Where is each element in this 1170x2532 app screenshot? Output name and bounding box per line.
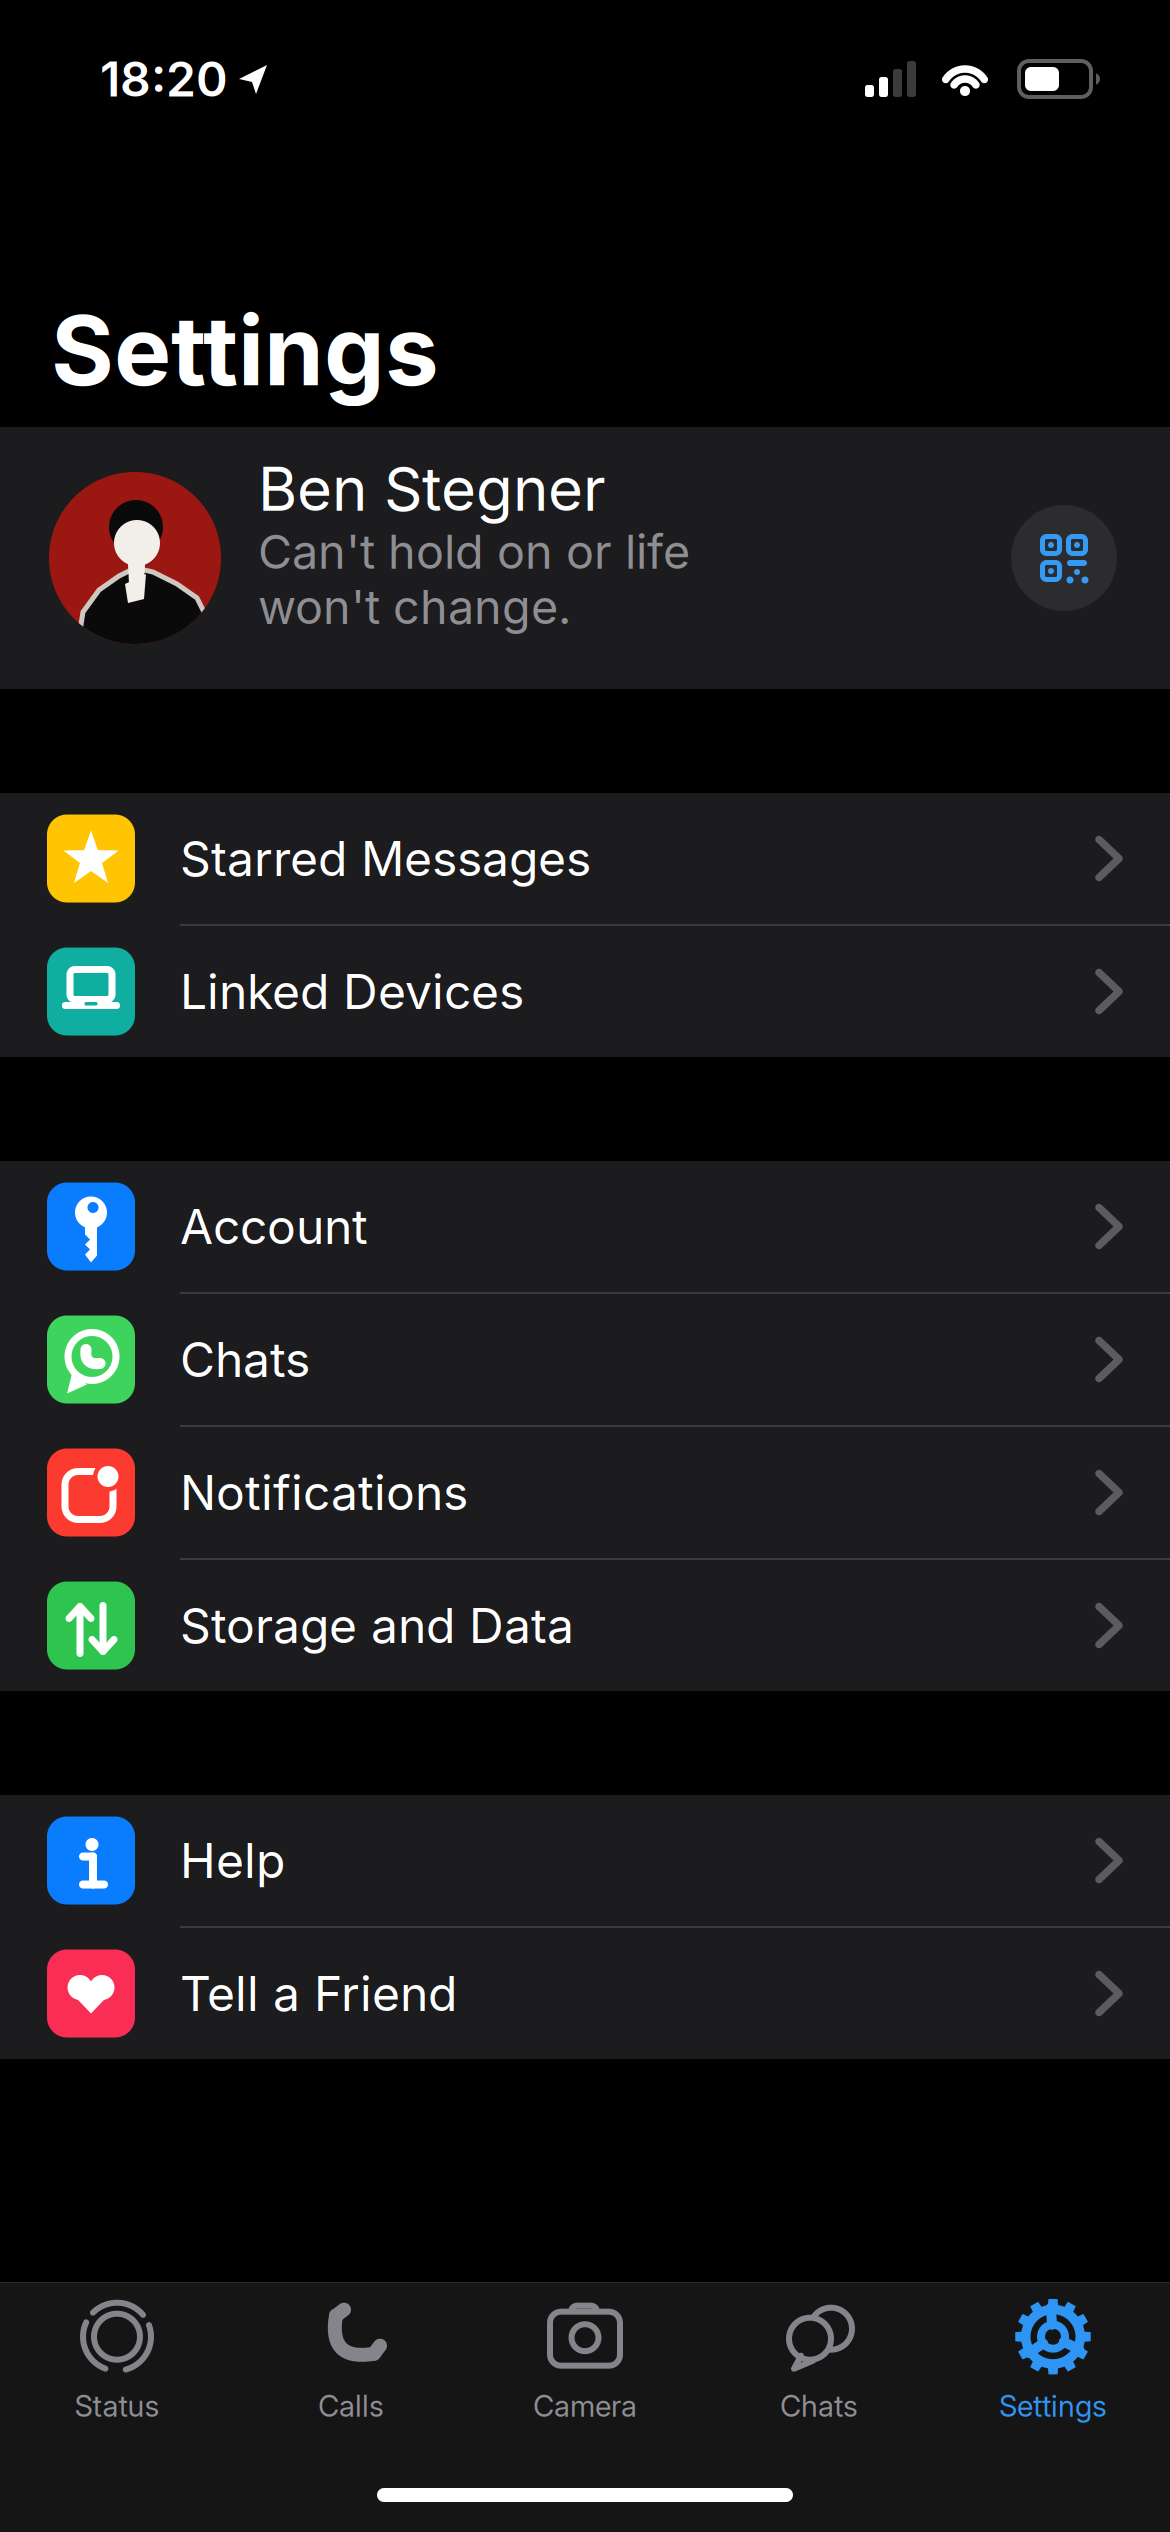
button[interactable]: Chats	[702, 2296, 936, 2426]
button[interactable]: Settings	[936, 2296, 1170, 2426]
staticText: won't change.	[258, 579, 571, 634]
button[interactable]: Ben Stegner	[0, 427, 1170, 689]
button[interactable]: Help	[0, 1795, 1170, 1926]
staticText: Status	[74, 2389, 159, 2423]
staticText: Tell a Friend	[180, 1965, 457, 2022]
staticText: Chats	[780, 2389, 858, 2423]
button[interactable]: Linked Devices	[0, 926, 1170, 1057]
staticText: Camera	[533, 2389, 637, 2423]
staticText: Settings	[999, 2389, 1107, 2423]
staticText: Chats	[180, 1331, 310, 1388]
staticText: Help	[180, 1832, 285, 1889]
button[interactable]: Storage and Data	[0, 1560, 1170, 1691]
staticText: Settings	[51, 294, 439, 407]
button[interactable]: Show QR code	[1011, 505, 1117, 611]
staticText: Starred Messages	[180, 830, 591, 887]
staticText: Account	[180, 1198, 368, 1255]
staticText: Notifications	[180, 1464, 468, 1521]
button[interactable]: Tell a Friend	[0, 1928, 1170, 2059]
button[interactable]: Notifications	[0, 1427, 1170, 1558]
staticText: Ben Stegner	[258, 454, 606, 524]
button[interactable]: Status	[0, 2296, 234, 2426]
staticText: 18:20	[100, 51, 228, 107]
button[interactable]: Account	[0, 1161, 1170, 1292]
button[interactable]: Starred Messages	[0, 793, 1170, 924]
staticText: Storage and Data	[180, 1597, 574, 1654]
staticText: Calls	[318, 2389, 384, 2423]
button[interactable]: Camera	[468, 2296, 702, 2426]
button[interactable]: Chats	[0, 1294, 1170, 1425]
button[interactable]: Calls	[234, 2296, 468, 2426]
staticText: Can't hold on or life	[258, 524, 690, 579]
staticText: Linked Devices	[180, 963, 524, 1020]
